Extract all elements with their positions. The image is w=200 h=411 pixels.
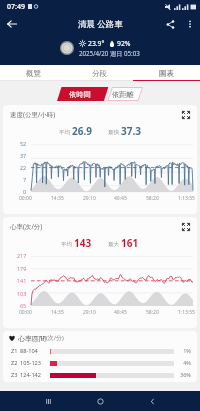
button[interactable]: Back [126,391,178,411]
staticText: 37.3 [121,124,141,138]
staticText: Z3 [11,371,18,379]
staticText: 14:35 [51,195,64,202]
staticText: 0 [23,188,27,195]
button[interactable]: Expand chart [178,107,193,122]
staticText: 2025/4/20 週日 05:03 [79,49,140,57]
staticText: 36% [178,371,191,379]
button[interactable]: Expand chart [178,219,193,234]
staticText: 依距離 [112,90,134,99]
button[interactable]: Z1 [11,345,191,357]
staticText: 40:45 [114,309,127,316]
staticText: 217 [17,252,27,259]
staticText: 65 [20,302,27,309]
staticText: 依時間 [69,90,91,99]
button[interactable]: Recent apps [22,391,74,411]
staticText: 最快 [108,129,119,136]
staticText: 52 [20,140,27,147]
staticText: 37 [20,152,27,159]
staticText: 161 [121,236,139,250]
staticText: 58:20 [146,195,159,202]
staticText: 心率(次/分) [10,222,43,231]
staticText: 29:10 [83,309,96,316]
staticText: 清晨 公路車 [78,18,123,30]
staticText: 00:00 [19,309,32,316]
staticText: 103 [17,290,27,297]
staticText: 速度(公里/小時) [10,110,56,119]
button[interactable]: Home [74,391,126,411]
button[interactable]: Z3 [11,369,191,381]
staticText: 7 [23,176,27,183]
button[interactable]: Share [160,13,180,35]
staticText: 23.9° [88,39,105,48]
staticText: 179 [17,265,27,272]
staticText: 40:45 [114,195,127,202]
staticText: 1:13:55 [178,195,195,202]
staticText: 143 [74,236,92,250]
staticText: 1:13:55 [178,309,195,316]
staticText: 最大 [108,241,119,248]
staticText: 22 [20,164,27,171]
staticText: 00:00 [19,195,32,202]
button[interactable]: Back [0,13,24,35]
button[interactable]: Z2 [11,357,191,369]
staticText: 概覽 [26,69,41,78]
staticText: 圖表 [159,69,174,78]
staticText: 58:20 [146,309,159,316]
staticText: 4% [178,359,191,367]
staticText: 1% [178,347,191,355]
button[interactable]: 概覽 [0,65,66,81]
button[interactable]: More options [180,13,200,35]
staticText: 分段 [92,69,107,78]
staticText: (次/分) [46,334,64,342]
staticText: 105-123 [20,359,50,367]
button[interactable]: 依距離 [102,87,143,101]
button[interactable]: 圖表 [133,65,200,81]
staticText: Z2 [11,359,18,367]
button[interactable]: 分段 [66,65,133,81]
button[interactable]: 依時間 [57,87,102,101]
staticText: 平均 [59,129,70,136]
staticText: 88-104 [20,347,50,355]
staticText: 心率區間 [18,334,46,343]
staticText: 141 [17,277,27,284]
staticText: 92% [117,39,131,48]
staticText: Z1 [11,347,18,355]
staticText: 29:10 [83,195,96,202]
staticText: 14:35 [51,309,64,316]
staticText: 平均 [61,241,72,248]
staticText: 07:49 [7,2,25,12]
staticText: 26.9 [72,124,92,138]
staticText: 124-142 [20,371,50,379]
